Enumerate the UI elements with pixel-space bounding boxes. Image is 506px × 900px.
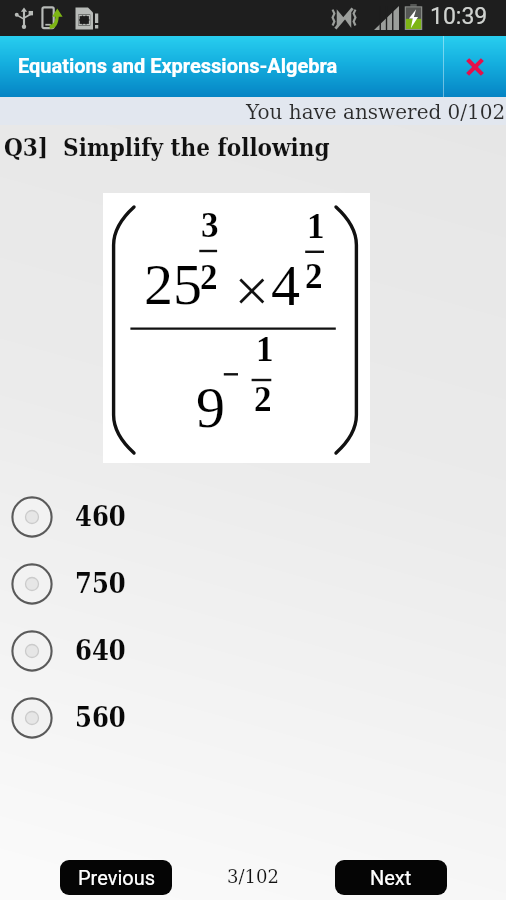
button[interactable]: 460	[0, 483, 506, 550]
staticText: 1	[307, 207, 325, 246]
staticText: 3	[201, 206, 219, 245]
button[interactable]: 560	[0, 684, 506, 751]
staticText: 460	[75, 501, 126, 533]
staticText: 2	[254, 380, 272, 419]
button[interactable]: 640	[0, 617, 506, 684]
staticText: 3/102	[227, 866, 279, 887]
staticText: 2	[305, 257, 323, 296]
staticText: Previous	[78, 866, 155, 889]
staticText: 4	[271, 253, 300, 317]
staticText: 750	[75, 568, 126, 600]
staticText: You have answered 0/102	[246, 100, 506, 123]
staticText: 10:39	[430, 3, 488, 30]
staticText: Next	[370, 866, 412, 889]
button[interactable]: Close	[444, 36, 506, 97]
staticText: Equations and Expressions-Algebra	[18, 54, 338, 77]
staticText: 2	[200, 258, 218, 297]
staticText: 1	[256, 330, 274, 369]
staticText: 25	[144, 252, 202, 316]
button[interactable]: Next	[335, 860, 447, 895]
staticText: 560	[75, 702, 126, 734]
button[interactable]: Previous	[60, 860, 172, 895]
staticText: 9	[196, 375, 225, 439]
button[interactable]: 750	[0, 550, 506, 617]
staticText: Q3] Simplify the following	[4, 133, 330, 161]
staticText: 640	[75, 635, 126, 667]
